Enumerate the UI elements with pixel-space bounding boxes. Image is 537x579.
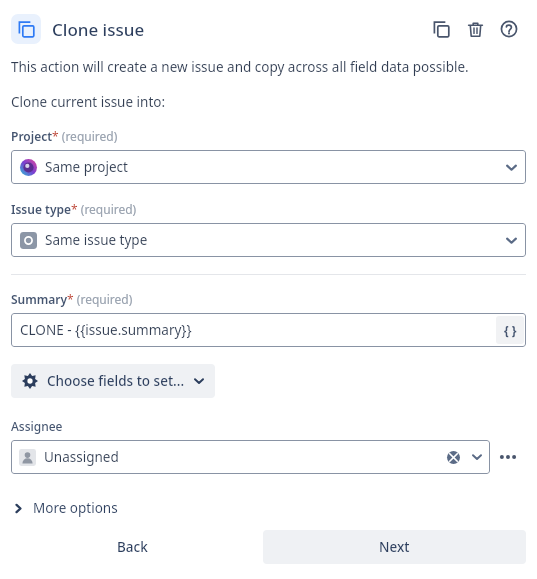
staticText: Same project bbox=[45, 158, 128, 176]
staticText: Clone current issue into: bbox=[11, 93, 166, 111]
staticText: Next bbox=[379, 538, 410, 556]
staticText: More options bbox=[33, 499, 118, 517]
button[interactable]: Next bbox=[263, 530, 526, 564]
button[interactable]: More bbox=[490, 440, 526, 474]
staticText: Back bbox=[117, 538, 148, 556]
staticText: Project* (required) bbox=[11, 128, 118, 144]
staticText: Clone issue bbox=[52, 18, 145, 41]
staticText: Choose fields to set... bbox=[47, 372, 185, 390]
staticText: This action will create a new issue and … bbox=[11, 58, 469, 76]
button[interactable]: More options bbox=[11, 496, 118, 520]
button[interactable]: CLONE - {{issue.summary}} bbox=[11, 313, 526, 347]
button[interactable]: Clone issue bbox=[11, 14, 41, 44]
button[interactable]: Unassigned bbox=[11, 440, 490, 474]
button[interactable]: Delete bbox=[458, 12, 492, 46]
button[interactable]: Choose fields to set... bbox=[11, 364, 215, 398]
button[interactable]: Insert smart value bbox=[496, 316, 524, 344]
button[interactable]: Help bbox=[492, 12, 526, 46]
button[interactable]: Same project bbox=[11, 150, 526, 184]
staticText: Same issue type bbox=[45, 231, 148, 249]
staticText: { } bbox=[504, 322, 517, 338]
button[interactable]: Duplicate bbox=[424, 12, 458, 46]
staticText: Assignee bbox=[11, 418, 63, 434]
staticText: Unassigned bbox=[44, 448, 119, 466]
button[interactable]: Back bbox=[11, 530, 253, 564]
staticText: CLONE - {{issue.summary}} bbox=[20, 321, 192, 339]
button[interactable]: Same issue type bbox=[11, 223, 526, 257]
staticText: Summary* (required) bbox=[11, 291, 133, 307]
staticText: Issue type* (required) bbox=[11, 201, 137, 217]
